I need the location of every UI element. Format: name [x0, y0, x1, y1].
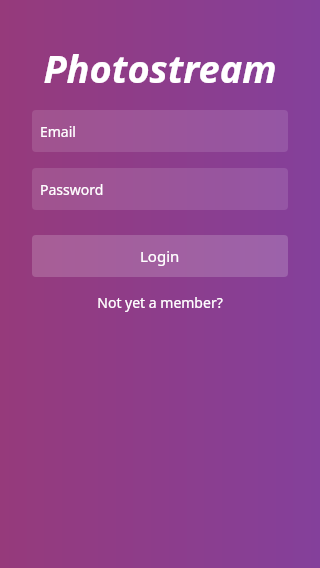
button[interactable]: Password	[32, 168, 288, 210]
button[interactable]: Not yet a member?	[32, 289, 288, 315]
staticText: Password	[40, 180, 104, 199]
staticText: Not yet a member?	[97, 293, 223, 312]
staticText: Email	[40, 122, 76, 141]
staticText: Photostream	[43, 42, 277, 94]
button[interactable]: Email	[32, 110, 288, 152]
button[interactable]: Login	[32, 235, 288, 277]
staticText: Login	[140, 246, 180, 266]
